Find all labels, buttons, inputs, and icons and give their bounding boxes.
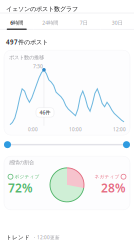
staticText: 12:00	[113, 126, 126, 133]
staticText: 7日	[80, 19, 88, 26]
staticText: 28%	[101, 180, 126, 196]
staticText: 6時間	[10, 19, 23, 26]
staticText: 7:30	[33, 63, 43, 70]
staticText: 10:00	[69, 126, 82, 133]
staticText: ポジティブ	[14, 174, 39, 180]
staticText: 497件のポスト	[6, 38, 48, 46]
staticText: ポスト数の推移	[9, 54, 44, 61]
staticText: イェソンのポスト数グラフ	[6, 5, 78, 13]
button[interactable]: 7日	[67, 17, 100, 30]
staticText: 24時間	[42, 19, 58, 26]
staticText: トレンド	[6, 234, 30, 241]
staticText: ネガティブ	[94, 174, 119, 180]
staticText: 72%	[8, 180, 33, 196]
button[interactable]: 24時間	[33, 17, 67, 30]
button[interactable]: 30日	[100, 17, 134, 30]
button[interactable]: 6時間	[0, 17, 33, 30]
staticText: 感情の割合	[9, 159, 34, 166]
staticText: ・12:00更新	[32, 234, 60, 241]
staticText: 30日	[112, 19, 123, 26]
staticText: 46件	[39, 109, 50, 116]
staticText: 0:00	[28, 126, 38, 133]
